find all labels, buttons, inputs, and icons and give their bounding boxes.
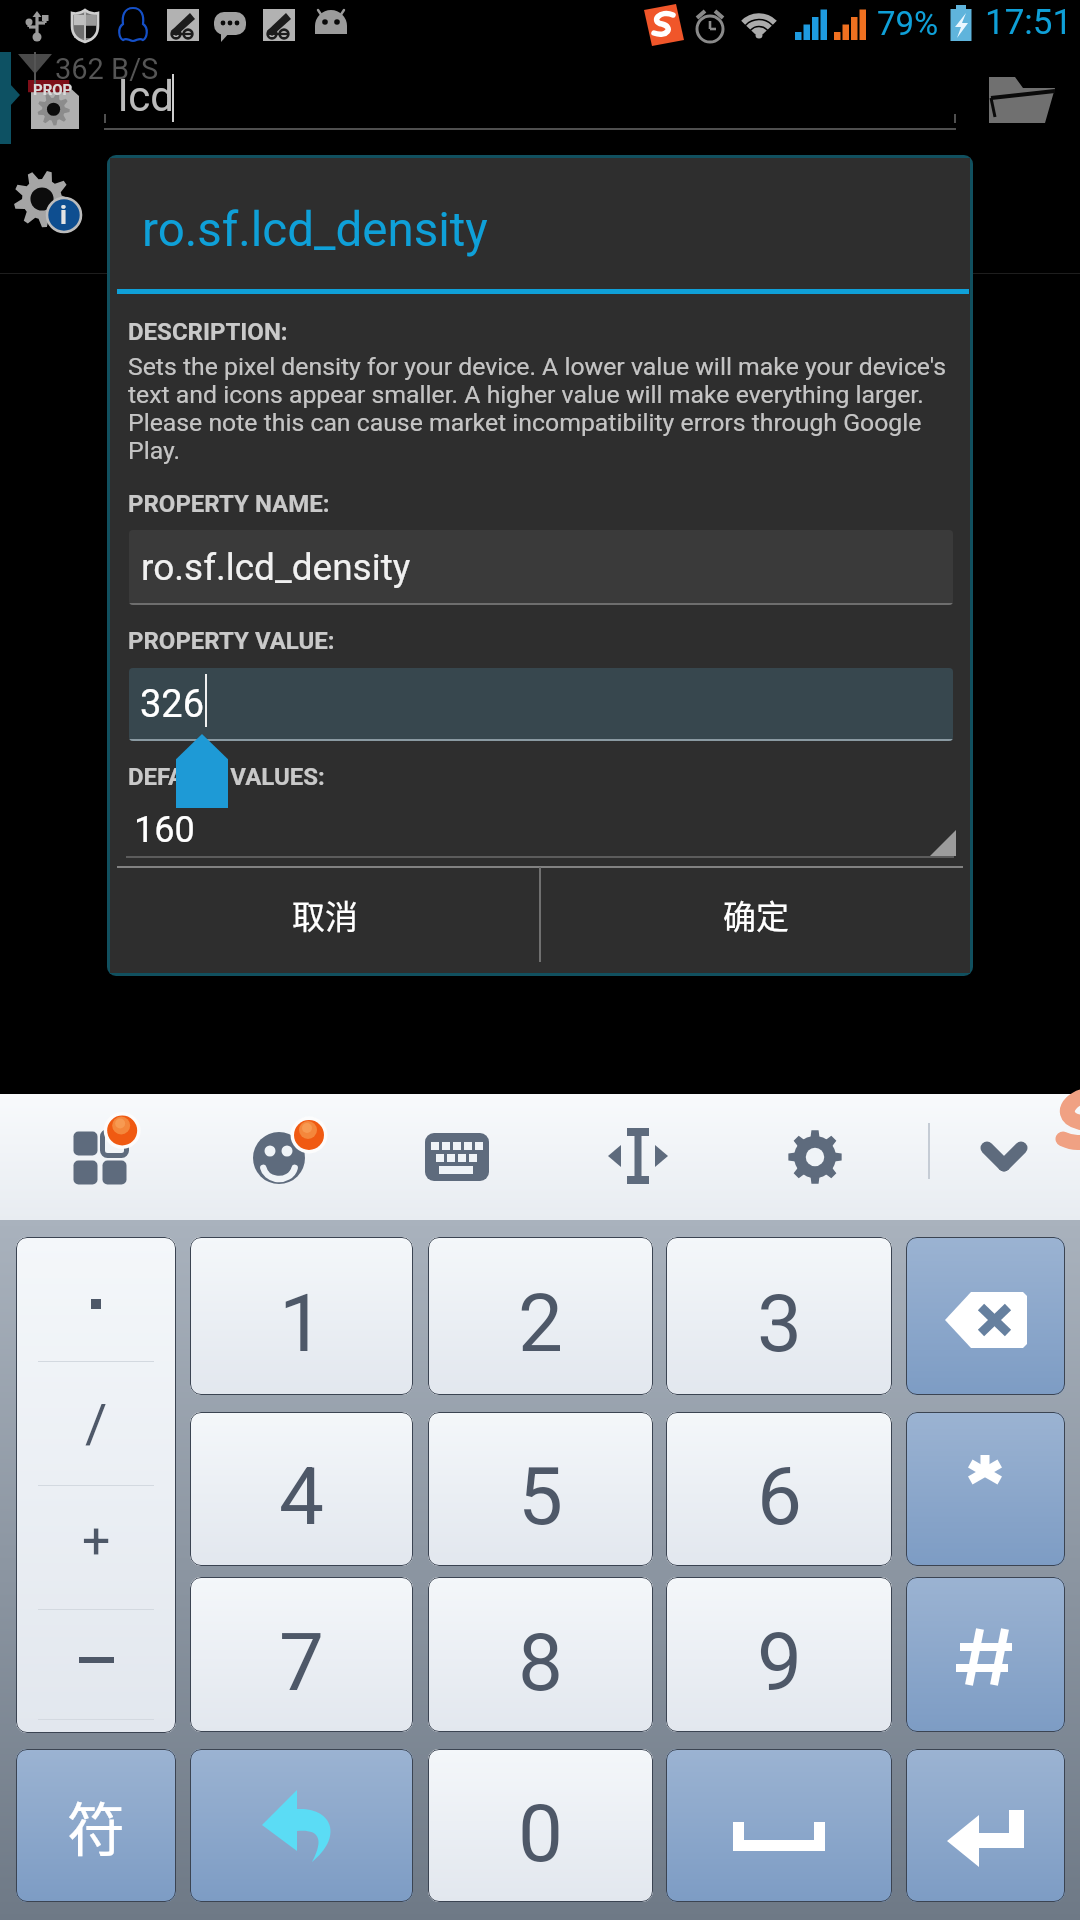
staticText: 362 B/S [55,52,159,86]
button[interactable]: Delete [906,1237,1065,1395]
staticText: ro.sf.lcd_density [141,546,411,589]
staticText: 326 [140,682,205,727]
button[interactable]: ro.sf.lcd_density [129,530,953,605]
staticText: 4 [279,1450,324,1544]
button[interactable]: Settings [761,1102,869,1206]
button[interactable]: 取消 [110,862,539,967]
button[interactable]: 9 [666,1577,892,1732]
button[interactable]: Open folder [975,65,1071,135]
staticText: 9 [757,1616,802,1710]
button[interactable]: 8 [428,1577,653,1732]
staticText: i [60,200,67,230]
staticText: ro.sf.lcd_density [142,202,488,258]
button[interactable]: 6 [666,1412,892,1566]
staticText: DESCRIPTION: [128,318,288,346]
button[interactable]: 4 [190,1412,413,1566]
button[interactable]: 2 [428,1237,653,1395]
staticText: 8 [518,1616,563,1710]
staticText: + [82,1512,111,1571]
staticText: 7 [279,1616,324,1710]
staticText: lcd [118,72,174,121]
staticText: 2 [518,1277,563,1371]
button[interactable]: 5 [428,1412,653,1566]
staticText: / [85,1392,108,1455]
staticText: 160 [134,809,195,851]
staticText: 1 [279,1277,324,1371]
button[interactable]: Keyboard layout [403,1102,511,1206]
button[interactable]: 326 [129,668,953,741]
button[interactable]: Hide keyboard [950,1102,1058,1206]
button[interactable]: Space [666,1749,892,1902]
button[interactable]: Undo [190,1749,413,1902]
button[interactable]: Star [906,1412,1065,1566]
button[interactable]: 符 [16,1749,176,1902]
staticText: 79% [877,4,939,43]
staticText: PROP [33,81,73,99]
staticText: 0 [518,1787,563,1881]
staticText: 6 [757,1450,802,1544]
staticText: 确定 [723,891,789,939]
staticText: 取消 [292,891,358,939]
staticText: Sets the pixel density for your device. … [128,352,954,465]
staticText: 3 [757,1277,802,1371]
button[interactable]: / [16,1237,176,1733]
staticText: PROPERTY VALUE: [128,627,335,655]
staticText: 符 [67,1784,126,1868]
button[interactable]: Hash [906,1577,1065,1732]
staticText: PROPERTY NAME: [128,490,330,518]
button[interactable]: Apps [46,1102,154,1206]
staticText: 5 [518,1450,563,1544]
staticText: 17:51 [985,2,1073,43]
button[interactable]: Enter [906,1749,1065,1902]
button[interactable]: 1 [190,1237,413,1395]
button[interactable]: 3 [666,1237,892,1395]
button[interactable]: Cursor control [583,1102,691,1206]
button[interactable]: 确定 [541,862,970,967]
button[interactable]: 7 [190,1577,413,1732]
staticText: DEFAULT VALUES: [128,763,325,791]
button[interactable]: Emoji [226,1102,334,1206]
button[interactable]: 0 [428,1749,653,1902]
